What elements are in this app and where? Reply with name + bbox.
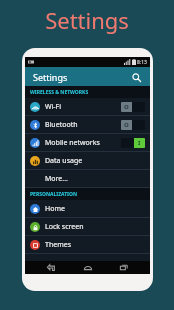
button[interactable]: Search (128, 69, 144, 85)
button[interactable]: Themes (25, 236, 150, 254)
button[interactable]: Off (121, 102, 145, 112)
staticText: Wi-Fi (45, 102, 62, 112)
staticText: Data usage (45, 156, 83, 166)
staticText: Bluetooth (45, 120, 78, 130)
button[interactable]: Bluetooth (25, 116, 150, 134)
staticText: WIRELESS & NETWORKS (30, 89, 89, 96)
staticText: O (124, 103, 129, 111)
button[interactable]: Recents (114, 261, 134, 274)
button[interactable]: Mobile networks (25, 134, 150, 152)
staticText: Lock screen (45, 222, 84, 232)
button[interactable]: On (121, 138, 145, 148)
button[interactable]: Home (78, 261, 98, 274)
staticText: 8:13 (137, 59, 147, 66)
button[interactable]: Home (25, 200, 150, 218)
button[interactable]: More... (25, 170, 150, 188)
button[interactable]: Data usage (25, 152, 150, 170)
staticText: Mobile networks (45, 138, 100, 148)
staticText: Themes (45, 240, 72, 250)
button[interactable]: Off (121, 120, 145, 130)
staticText: O (124, 121, 129, 129)
staticText: Home (45, 204, 65, 214)
button[interactable]: Back (41, 261, 61, 274)
button[interactable]: Lock screen (25, 218, 150, 236)
staticText: Settings (33, 71, 68, 83)
staticText: I (138, 139, 141, 147)
staticText: PERSONALIZATION (30, 191, 78, 198)
staticText: More... (45, 174, 68, 184)
staticText: Settings (0, 5, 174, 35)
button[interactable]: Wi-Fi (25, 98, 150, 116)
